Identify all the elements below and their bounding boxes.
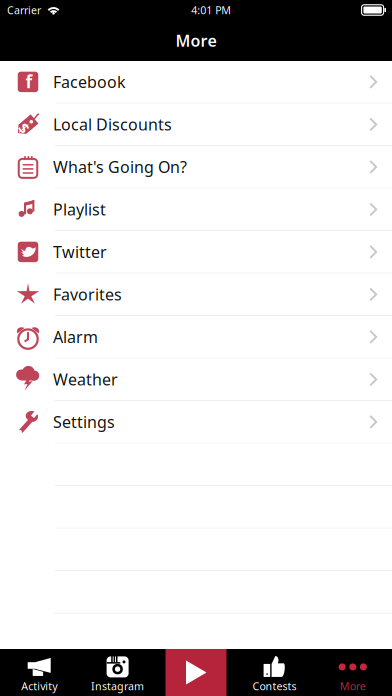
button[interactable]: Alarm xyxy=(0,316,392,358)
button[interactable]: Weather xyxy=(0,358,392,401)
staticText: Activity xyxy=(21,679,57,693)
button[interactable]: Instagram xyxy=(78,649,157,696)
staticText: Alarm xyxy=(53,326,98,347)
button[interactable]: Contests xyxy=(235,649,314,696)
staticText: 4:01 PM xyxy=(191,3,231,17)
button[interactable]: Favorites xyxy=(0,273,392,316)
button[interactable]: Settings xyxy=(0,401,392,443)
staticText: Carrier xyxy=(7,3,41,17)
staticText: Twitter xyxy=(53,241,107,262)
staticText: $ xyxy=(22,119,30,139)
staticText: More xyxy=(340,679,366,693)
button[interactable]: Playlist xyxy=(0,188,392,231)
staticText: Facebook xyxy=(53,71,126,92)
button[interactable]: $ xyxy=(0,103,392,146)
staticText: More xyxy=(175,30,216,51)
staticText: What's Going On? xyxy=(53,156,187,177)
staticText: f xyxy=(25,70,32,93)
button[interactable]: f xyxy=(0,61,392,103)
staticText: Local Discounts xyxy=(53,114,172,135)
staticText: Weather xyxy=(53,369,118,390)
staticText: Instagram xyxy=(91,679,144,693)
button[interactable]: Play xyxy=(157,649,235,696)
staticText: Favorites xyxy=(53,284,122,305)
button[interactable]: Activity xyxy=(0,649,78,696)
staticText: Contests xyxy=(252,679,296,693)
button[interactable]: What's Going On? xyxy=(0,146,392,188)
staticText: Playlist xyxy=(53,199,106,220)
staticText: Settings xyxy=(53,411,115,432)
button[interactable]: Twitter xyxy=(0,231,392,273)
button[interactable]: More xyxy=(314,649,392,696)
